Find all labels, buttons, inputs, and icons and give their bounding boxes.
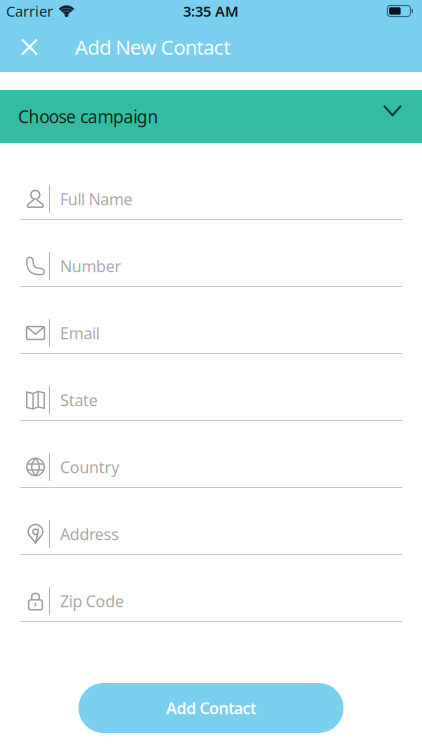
staticText: Country (60, 456, 119, 478)
button[interactable]: Zip Code (20, 581, 402, 622)
staticText: Address (60, 523, 119, 545)
button[interactable]: Close (0, 39, 47, 54)
staticText: Add Contact (166, 697, 256, 719)
button[interactable]: Address (20, 514, 402, 555)
button[interactable]: State (20, 380, 402, 421)
button[interactable]: Add Contact (78, 683, 343, 733)
staticText: Zip Code (60, 590, 124, 612)
staticText: Email (60, 322, 100, 344)
staticText: State (60, 389, 98, 411)
button[interactable]: Choose campaign (0, 90, 422, 143)
button[interactable]: Full Name (20, 179, 402, 220)
staticText: Carrier (6, 1, 53, 21)
button[interactable]: Country (20, 447, 402, 488)
staticText: Number (60, 255, 121, 277)
button[interactable]: Email (20, 313, 402, 354)
staticText: Add New Contact (75, 34, 230, 60)
staticText: Choose campaign (18, 105, 158, 128)
staticText: 3:35 AM (183, 1, 239, 21)
staticText: Full Name (60, 188, 133, 210)
button[interactable]: Number (20, 246, 402, 287)
